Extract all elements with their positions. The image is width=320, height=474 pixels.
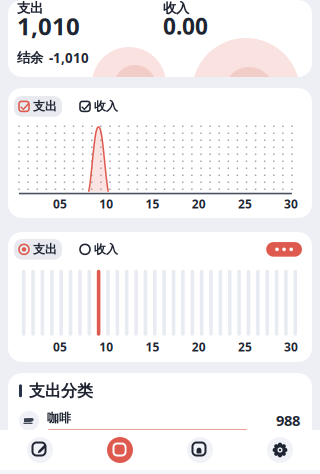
staticText: 支出 bbox=[17, 0, 43, 16]
button[interactable]: 记一笔 bbox=[80, 430, 160, 470]
staticText: 支出 bbox=[33, 242, 57, 257]
staticText: -1,010 bbox=[49, 49, 89, 67]
staticText: 988 bbox=[276, 411, 300, 430]
staticText: 25 bbox=[238, 196, 252, 212]
button[interactable]: 收入 bbox=[75, 239, 123, 260]
staticText: 10 bbox=[99, 196, 113, 212]
staticText: 15 bbox=[145, 339, 159, 355]
staticText: 收入 bbox=[163, 0, 189, 16]
staticText: 收入 bbox=[94, 242, 118, 257]
button[interactable]: 收入 bbox=[75, 96, 123, 117]
button[interactable]: 资产 bbox=[160, 430, 240, 470]
button[interactable]: 支出 bbox=[14, 239, 62, 260]
staticText: 05 bbox=[53, 196, 67, 212]
staticText: 收入 bbox=[94, 99, 118, 114]
staticText: 15 bbox=[145, 196, 159, 212]
staticText: 05 bbox=[53, 339, 67, 355]
staticText: 30 bbox=[284, 196, 298, 212]
button[interactable]: 设置 bbox=[240, 430, 320, 470]
button[interactable]: 记账 bbox=[0, 430, 80, 470]
staticText: 10 bbox=[99, 339, 113, 355]
staticText: 咖啡 bbox=[47, 411, 71, 425]
staticText: 支出分类 bbox=[29, 381, 93, 401]
staticText: 30 bbox=[284, 339, 298, 355]
staticText: 结余 bbox=[17, 50, 43, 66]
staticText: 20 bbox=[192, 196, 206, 212]
button[interactable]: 支出 bbox=[14, 96, 62, 117]
staticText: 20 bbox=[192, 339, 206, 355]
staticText: 25 bbox=[238, 339, 252, 355]
staticText: 97.82% bbox=[263, 431, 300, 445]
staticText: 0.00 bbox=[163, 11, 208, 41]
staticText: 支出 bbox=[33, 99, 57, 114]
staticText: 1,010 bbox=[17, 10, 80, 42]
button[interactable]: 更多 bbox=[266, 242, 302, 257]
